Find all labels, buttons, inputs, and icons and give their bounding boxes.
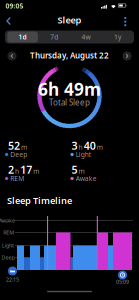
staticText: 4w [81,33,90,41]
button[interactable] [7,31,38,42]
staticText: h [79,143,83,151]
staticText: h [15,167,19,175]
staticText: m [97,143,103,151]
staticText: 1d [19,33,27,41]
button[interactable] [7,51,16,60]
button[interactable]: 4w [70,30,101,43]
staticText: REM [3,229,14,236]
staticText: 2 [8,162,14,177]
staticText: Thursday, August 22 [30,50,109,61]
staticText: 22:15 [6,276,19,283]
staticText: Awake [76,174,97,183]
staticText: m [33,167,39,175]
staticText: Total Sleep [49,97,90,108]
button[interactable] [2,14,16,28]
staticText: 6h 49m [38,77,101,100]
staticText: Sleep Timeline [7,194,72,207]
button[interactable] [119,14,131,28]
staticText: 7d [50,33,58,41]
staticText: 3 [71,138,77,153]
button[interactable]: 7d [39,30,70,43]
button[interactable]: 1y [102,30,133,43]
staticText: m [21,143,27,151]
staticText: 17 [20,162,32,177]
staticText: m [79,167,85,175]
staticText: 05:09 [116,278,129,285]
button[interactable] [122,51,131,60]
staticText: 1y [114,33,121,41]
staticText: 09:05 [5,2,23,10]
staticText: Awake [0,217,15,224]
staticText: 5 [71,162,77,177]
staticText: REM [10,174,24,183]
staticText: Light [2,242,14,249]
staticText: 52 [8,138,20,153]
staticText: Sleep [57,14,81,26]
staticText: Deep [1,254,14,261]
staticText: 40 [84,138,96,153]
staticText: Deep [10,150,27,159]
staticText: Light [76,150,91,159]
